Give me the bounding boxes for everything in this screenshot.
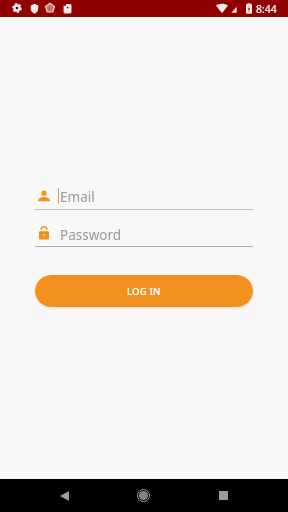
staticText: Password (60, 226, 122, 244)
button[interactable]: Password (35, 224, 253, 245)
button[interactable]: Email (35, 186, 253, 207)
staticText: 8:44 (256, 2, 277, 16)
button[interactable]: LOG IN (35, 275, 253, 307)
staticText: Email (60, 188, 95, 206)
button[interactable]: Home (126, 479, 161, 512)
button[interactable]: Back (47, 479, 82, 512)
button[interactable]: Recent apps (206, 479, 241, 512)
staticText: LOG IN (127, 285, 161, 298)
